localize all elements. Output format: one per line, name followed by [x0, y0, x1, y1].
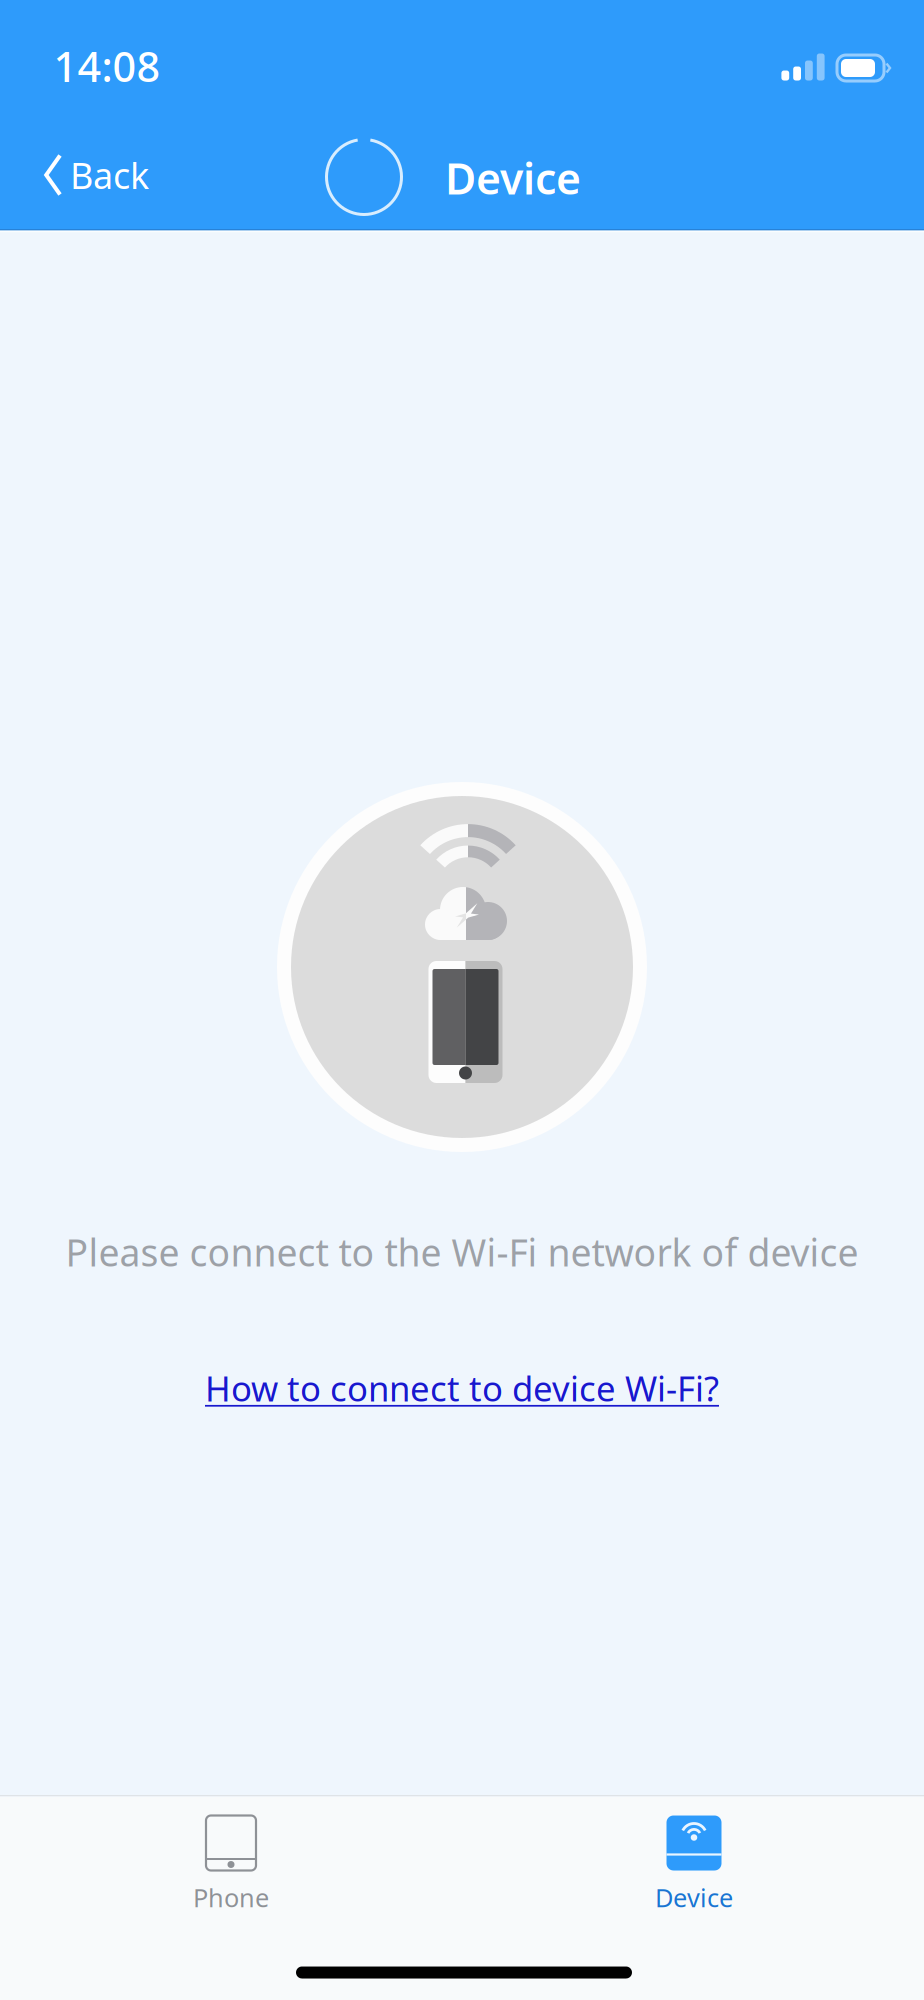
button[interactable]: How to connect to device Wi-Fi? [191, 1353, 733, 1423]
staticText: Back [70, 151, 149, 199]
staticText: How to connect to device Wi-Fi? [205, 1365, 719, 1411]
staticText: 14:08 [53, 39, 160, 93]
staticText: Device [445, 150, 581, 206]
button[interactable]: Back [0, 120, 190, 230]
button[interactable]: Device [578, 1795, 809, 1998]
staticText: Device [655, 1880, 733, 1914]
button[interactable]: Phone [115, 1795, 346, 1998]
staticText: Please connect to the Wi-Fi network of d… [65, 1227, 858, 1277]
staticText: Phone [193, 1880, 269, 1914]
